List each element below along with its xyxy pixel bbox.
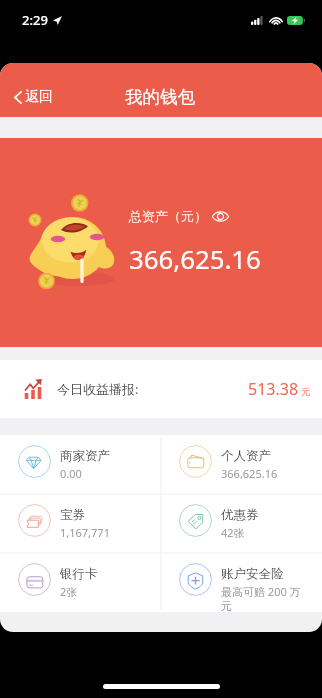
staticText: 银行卡	[60, 566, 98, 582]
staticText: 宝券	[60, 507, 85, 523]
button[interactable]: 优惠券	[161, 494, 322, 553]
button[interactable]: Toggle balance visibility	[211, 210, 230, 223]
staticText: 返回	[25, 88, 53, 106]
staticText: 商家资产	[60, 448, 110, 464]
button[interactable]: 今日收益播报:	[0, 360, 322, 418]
staticText: 账户安全险	[221, 566, 284, 582]
staticText: 总资产（元）	[129, 208, 207, 224]
staticText: 个人资产	[221, 448, 271, 464]
staticText: 2:29	[22, 11, 48, 29]
staticText: 最高可赔 200 万元	[221, 584, 307, 612]
staticText: 优惠券	[221, 507, 259, 523]
button[interactable]: 宝券	[0, 494, 161, 553]
staticText: 366,625.16	[221, 466, 278, 481]
staticText: 42张	[221, 525, 245, 540]
button[interactable]: 个人资产	[161, 435, 322, 494]
button[interactable]: 账户安全险	[161, 553, 322, 612]
staticText: 今日收益播报:	[57, 380, 139, 398]
staticText: 2张	[60, 584, 78, 599]
staticText: 0.00	[60, 466, 82, 481]
staticText: 513.38	[248, 378, 299, 400]
staticText: 我的钱包	[125, 86, 195, 108]
staticText: 元	[301, 386, 311, 398]
button[interactable]: 返回	[11, 83, 56, 111]
staticText: 1,167,771	[60, 525, 110, 540]
button[interactable]: 银行卡	[0, 553, 161, 612]
staticText: 366,625.16	[129, 241, 261, 276]
button[interactable]: 商家资产	[0, 435, 161, 494]
